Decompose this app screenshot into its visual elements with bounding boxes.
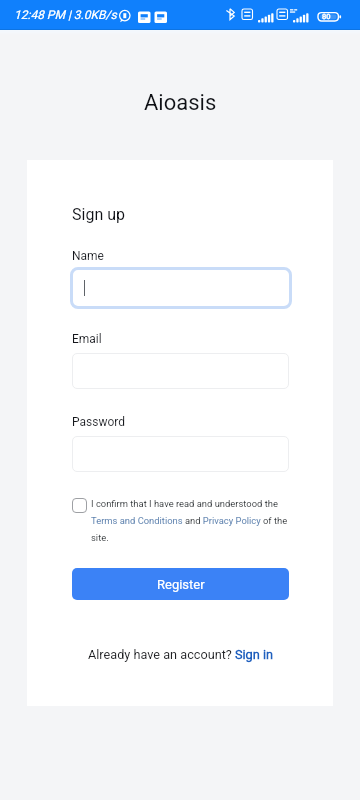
button[interactable]: Name input bbox=[70, 267, 292, 309]
button[interactable]: I confirm terms checkbox bbox=[72, 498, 87, 513]
staticText: Sign in bbox=[235, 647, 273, 662]
button[interactable]: Email input bbox=[72, 353, 289, 389]
button[interactable]: Sign in bbox=[235, 647, 273, 662]
staticText: 80 bbox=[322, 12, 331, 21]
staticText: Register bbox=[157, 577, 205, 592]
staticText: 12:48 PM | 3.0KB/s bbox=[14, 8, 117, 22]
staticText: Already have an account? bbox=[88, 647, 235, 662]
staticText: Aioasis bbox=[144, 90, 217, 116]
button[interactable]: Password input bbox=[72, 436, 289, 472]
staticText: Sign up bbox=[72, 205, 125, 224]
staticText: Name bbox=[72, 249, 104, 263]
button[interactable]: Register bbox=[72, 568, 289, 600]
staticText: Email bbox=[72, 332, 102, 346]
staticText: Password bbox=[72, 415, 126, 429]
staticText: I confirm that I have read and understoo… bbox=[91, 498, 291, 543]
